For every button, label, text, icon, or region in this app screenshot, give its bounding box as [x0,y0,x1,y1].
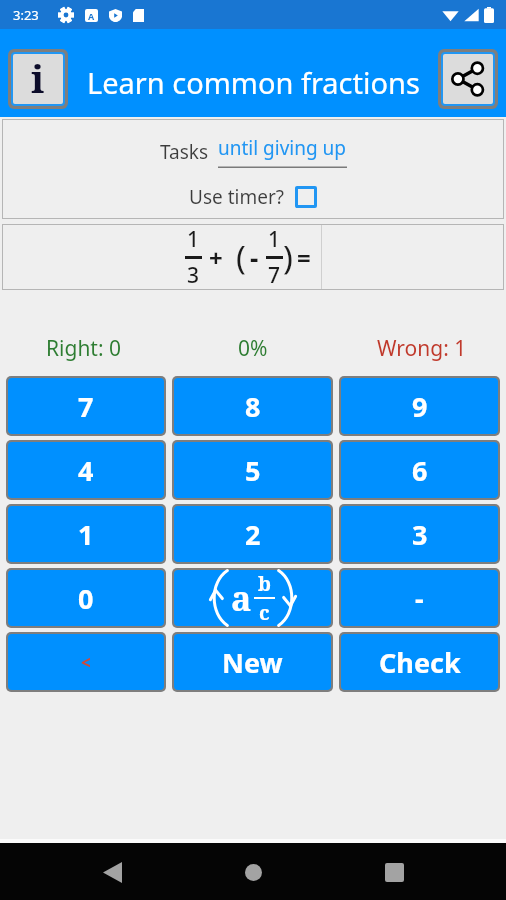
staticText: 3 [187,261,200,290]
staticText: Learn common fractions [87,63,420,102]
button[interactable]: Back [88,848,136,896]
staticText: 7 [78,388,94,425]
button[interactable]: Share [443,54,493,104]
button[interactable]: 6 [341,442,498,498]
button[interactable]: 5 [174,442,331,498]
button[interactable]: New [174,634,331,690]
staticText: 1 [187,225,200,254]
staticText: i [31,52,45,102]
staticText: 5 [245,452,261,489]
staticText: Use timer? [189,184,284,210]
staticText: 9 [412,388,428,425]
staticText: 4 [78,452,94,489]
staticText: 0 [78,580,94,617]
staticText: Tasks [160,139,209,165]
staticText: 3 [412,516,428,553]
staticText: + [209,241,223,274]
button[interactable]: - [341,570,498,626]
staticText: 3:23 [13,6,39,24]
button[interactable]: 8 [174,378,331,434]
button[interactable]: Check [341,634,498,690]
staticText: Wrong: 1 [377,334,467,363]
staticText: 1 [268,225,281,254]
staticText: 7 [268,261,281,290]
staticText: 0% [238,334,268,363]
button[interactable]: < [8,634,164,690]
button[interactable]: Info [13,54,63,104]
button[interactable]: 7 [8,378,164,434]
staticText: until giving up [218,135,347,161]
button[interactable]: until giving up [218,135,347,168]
button[interactable]: a [174,570,331,626]
button[interactable]: 4 [8,442,164,498]
button[interactable]: 2 [174,506,331,562]
staticText: 6 [412,452,428,489]
button[interactable]: 0 [8,570,164,626]
staticText: 1 [78,516,94,553]
staticText: - [415,580,424,617]
button[interactable]: Recents [370,848,418,896]
staticText: A [88,10,95,22]
staticText: b [258,570,271,597]
button[interactable]: 1 [8,506,164,562]
staticText: a [231,575,252,621]
staticText: c [259,599,270,626]
staticText: ) [283,235,293,280]
staticText: = [297,241,311,274]
staticText: 2 [245,516,261,553]
button[interactable]: 3 [341,506,498,562]
button[interactable]: 9 [341,378,498,434]
button[interactable]: Home [229,848,277,896]
button[interactable]: Use timer checkbox [295,186,317,208]
staticText: - [250,240,259,275]
staticText: Right: 0 [46,334,122,363]
staticText: New [222,644,283,681]
staticText: Check [379,644,461,681]
staticText: < [81,651,91,674]
staticText: 8 [245,388,261,425]
staticText: ( [236,235,246,280]
